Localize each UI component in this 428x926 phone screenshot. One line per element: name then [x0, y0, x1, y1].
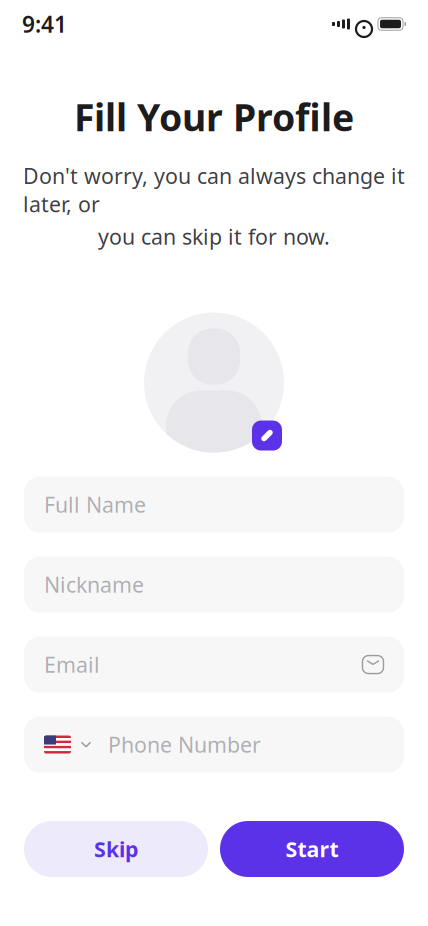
staticText: Nickname	[44, 570, 144, 599]
button[interactable]: Phone Number	[24, 717, 404, 773]
button[interactable]: Nickname	[24, 557, 404, 613]
button[interactable]: Skip	[24, 821, 208, 877]
staticText: Phone Number	[108, 730, 261, 759]
button[interactable]: Full Name	[24, 477, 404, 533]
staticText: Full Name	[44, 490, 146, 519]
staticText: Fill Your Profile	[74, 92, 354, 142]
button[interactable]: Edit profile photo	[252, 421, 282, 451]
staticText: Start	[285, 835, 338, 863]
button[interactable]: Start	[220, 821, 404, 877]
staticText: Skip	[94, 835, 138, 863]
staticText: Don't worry, you can always change it la…	[23, 162, 405, 218]
button[interactable]: Email	[24, 637, 404, 693]
staticText: you can skip it for now.	[98, 222, 330, 250]
staticText: 9:41	[22, 9, 67, 39]
staticText: Email	[44, 650, 100, 679]
